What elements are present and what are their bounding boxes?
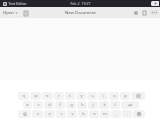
button[interactable]: n <box>89 110 99 118</box>
button[interactable]: h <box>77 101 87 109</box>
button[interactable]: Window controls <box>151 1 159 6</box>
staticText: v <box>71 111 74 117</box>
button[interactable]: r <box>54 92 64 100</box>
staticText: . <box>126 111 128 117</box>
button[interactable]: q <box>18 92 29 100</box>
button[interactable]: v <box>67 110 77 118</box>
button[interactable]: Shift <box>18 110 31 118</box>
button[interactable]: j <box>88 101 98 109</box>
button[interactable]: f <box>55 101 65 109</box>
button[interactable]: b <box>78 110 88 118</box>
button[interactable]: i <box>98 92 108 100</box>
staticText: t <box>69 93 71 99</box>
staticText: r <box>58 93 60 99</box>
button[interactable]: w <box>30 92 41 100</box>
staticText: b <box>82 111 85 117</box>
staticText: c <box>60 111 63 117</box>
button[interactable]: c <box>56 110 66 118</box>
button[interactable]: , <box>111 110 121 118</box>
staticText: e <box>46 93 49 99</box>
button[interactable]: Settings <box>132 9 139 16</box>
button[interactable]: Text Editor <box>3 1 27 6</box>
button[interactable]: s <box>33 101 43 109</box>
staticText: z <box>37 111 39 117</box>
staticText: o <box>113 93 116 99</box>
button[interactable]: k <box>99 101 109 109</box>
button[interactable]: g <box>66 101 76 109</box>
button[interactable]: o <box>109 92 119 100</box>
button[interactable]: a <box>23 101 32 109</box>
staticText: Text Editor <box>8 1 27 6</box>
staticText: j <box>92 102 94 108</box>
button[interactable]: New file <box>22 10 29 17</box>
staticText: f <box>59 102 61 108</box>
staticText: w <box>34 93 38 99</box>
button[interactable]: y <box>76 92 86 100</box>
button[interactable]: d <box>44 101 54 109</box>
button[interactable]: Open <box>3 10 18 16</box>
staticText: l <box>114 102 116 108</box>
button[interactable]: Language <box>133 110 145 118</box>
button[interactable]: u <box>87 92 97 100</box>
staticText: n <box>93 111 96 117</box>
staticText: Open <box>3 10 14 16</box>
staticText: u <box>91 93 94 99</box>
staticText: d <box>48 102 51 108</box>
button[interactable]: z <box>32 110 43 118</box>
staticText: a <box>26 102 29 108</box>
staticText: y <box>80 93 83 99</box>
button[interactable]: Save <box>141 9 148 16</box>
staticText: g <box>70 102 73 108</box>
button[interactable]: m <box>100 110 110 118</box>
button[interactable]: Backspace <box>131 92 145 100</box>
button[interactable]: l <box>110 101 120 109</box>
staticText: k <box>103 102 106 108</box>
button[interactable]: More options <box>150 10 158 15</box>
button[interactable]: Enter <box>121 101 139 109</box>
button[interactable]: p <box>120 92 130 100</box>
button[interactable]: t <box>65 92 75 100</box>
staticText: p <box>124 93 127 99</box>
staticText: i <box>102 93 104 99</box>
staticText: s <box>37 102 40 108</box>
staticText: h <box>81 102 84 108</box>
button[interactable]: e <box>42 92 53 100</box>
button[interactable]: New Document <box>65 10 96 16</box>
staticText: q <box>22 93 25 99</box>
staticText: Feb 2 19:27 <box>70 1 91 6</box>
button[interactable]: x <box>44 110 55 118</box>
staticText: x <box>48 111 51 117</box>
staticText: m <box>103 111 107 117</box>
staticText: , <box>115 111 117 117</box>
